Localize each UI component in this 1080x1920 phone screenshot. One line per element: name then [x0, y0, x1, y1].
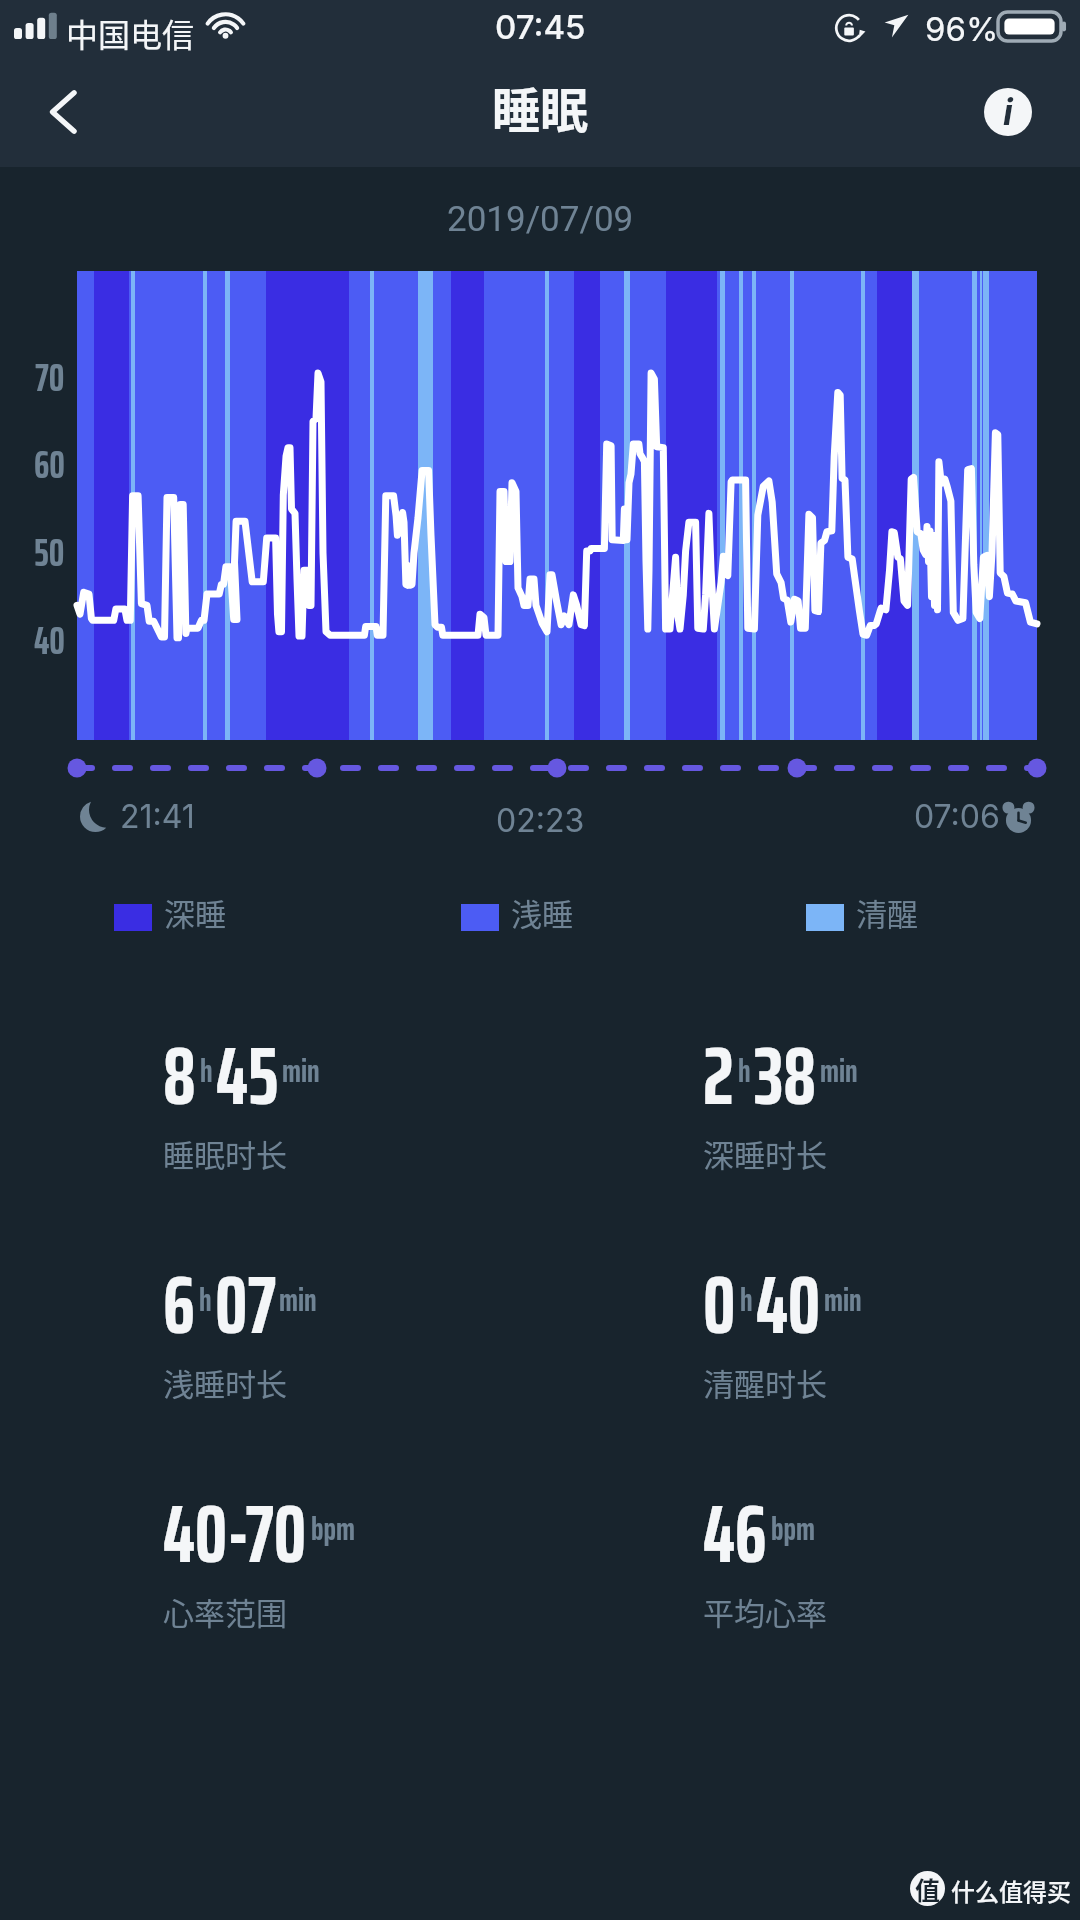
staticText: h	[199, 1275, 212, 1325]
staticText: 70	[35, 347, 65, 408]
staticText: min	[279, 1275, 317, 1325]
staticText: 07:06	[914, 797, 1000, 836]
staticText: 45	[216, 1012, 279, 1139]
staticText: 2019/07/09	[447, 199, 634, 240]
staticText: 深睡时长	[703, 1131, 827, 1176]
staticText: 平均心率	[703, 1589, 827, 1634]
staticText: 6	[163, 1241, 195, 1368]
staticText: min	[282, 1046, 320, 1096]
staticText: 2	[703, 1012, 734, 1139]
staticText: h	[200, 1046, 213, 1096]
staticText: 02:23	[496, 801, 585, 840]
staticText: 8	[163, 1012, 196, 1139]
staticText: bpm	[311, 1504, 355, 1554]
staticText: 21:41	[120, 797, 195, 836]
staticText: 60	[34, 434, 65, 495]
staticText: 浅睡时长	[163, 1360, 287, 1405]
staticText: 07	[215, 1241, 276, 1368]
staticText: 40	[34, 610, 65, 671]
staticText: 睡眠	[492, 72, 589, 142]
staticText: 中国电信	[66, 10, 195, 56]
staticText: min	[820, 1046, 858, 1096]
staticText: 50	[34, 522, 65, 583]
staticText: 浅睡	[511, 890, 573, 935]
staticText: 0	[703, 1241, 736, 1368]
staticText: 40-70	[163, 1470, 307, 1597]
button[interactable]: Info	[958, 62, 1058, 162]
staticText: min	[824, 1275, 862, 1325]
staticText: 睡眠时长	[163, 1131, 287, 1176]
staticText: h	[738, 1046, 751, 1096]
staticText: 清醒时长	[703, 1360, 827, 1405]
staticText: 96%	[925, 9, 999, 49]
staticText: 清醒	[856, 890, 918, 935]
staticText: 40	[756, 1241, 821, 1368]
staticText: i	[1003, 90, 1013, 134]
staticText: 46	[703, 1470, 767, 1597]
staticText: 深睡	[164, 890, 226, 935]
button[interactable]: Back	[14, 62, 114, 162]
staticText: bpm	[771, 1504, 815, 1554]
staticText: 07:45	[495, 7, 586, 47]
staticText: h	[740, 1275, 753, 1325]
staticText: 值	[915, 1871, 941, 1906]
staticText: 什么值得买	[951, 1873, 1071, 1908]
staticText: 心率范围	[163, 1589, 287, 1634]
staticText: 38	[754, 1012, 817, 1139]
